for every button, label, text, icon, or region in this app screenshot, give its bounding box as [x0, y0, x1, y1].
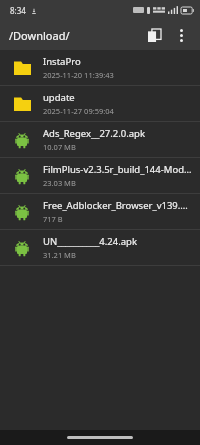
staticText: /Download/: [9, 28, 70, 43]
staticText: 10.07 MB: [43, 142, 76, 152]
staticText: 2025-11-27 09:59:04: [43, 106, 114, 116]
button[interactable]: UN__________4.24.apk: [0, 230, 200, 265]
button[interactable]: update: [0, 86, 200, 121]
button[interactable]: InstaPro: [0, 50, 200, 85]
button[interactable]: Ads_Regex__27.2.0.apk: [0, 122, 200, 157]
button[interactable]: FilmPlus-v2.3.5r_build_144-Mod.apk: [0, 158, 200, 193]
staticText: FilmPlus-v2.3.5r_build_144-Mod.apk: [43, 163, 192, 176]
staticText: Ads_Regex__27.2.0.apk: [43, 127, 146, 140]
staticText: 23.03 MB: [43, 178, 76, 188]
staticText: 717 B: [43, 214, 63, 224]
staticText: 31.21 MB: [43, 250, 76, 260]
staticText: update: [43, 91, 75, 104]
staticText: 8:34: [10, 5, 26, 16]
staticText: 2025-11-20 11:39:43: [43, 70, 114, 80]
button[interactable]: Free_Adblocker_Browser_v139.1.3…: [0, 194, 200, 229]
button[interactable]: Copy: [140, 21, 168, 49]
staticText: Free_Adblocker_Browser_v139.1.3…: [43, 199, 192, 212]
staticText: InstaPro: [43, 55, 81, 68]
staticText: UN__________4.24.apk: [43, 235, 137, 248]
button[interactable]: More options: [168, 22, 194, 48]
